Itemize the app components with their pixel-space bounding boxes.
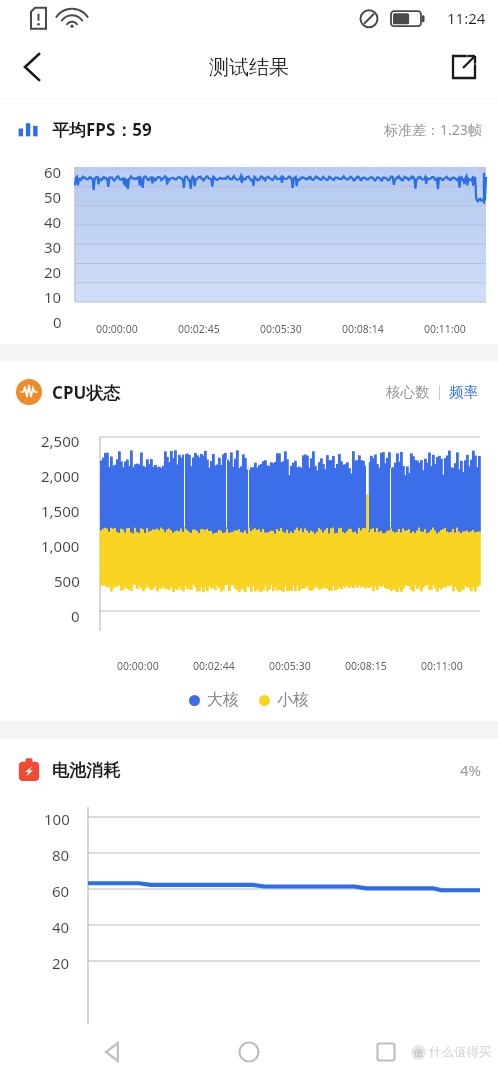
staticText: 值 bbox=[414, 1047, 423, 1058]
staticText: 测试结果 bbox=[209, 55, 289, 80]
staticText: 2,000 bbox=[41, 466, 80, 486]
staticText: 平均FPS：59 bbox=[52, 118, 152, 141]
staticText: 4% bbox=[460, 760, 482, 780]
staticText: 40 bbox=[52, 917, 70, 937]
staticText: 核心数 bbox=[386, 383, 430, 401]
staticText: 大核 bbox=[207, 690, 239, 710]
staticText: 20 bbox=[52, 953, 70, 973]
staticText: 100 bbox=[44, 809, 70, 829]
button[interactable]: 频率 bbox=[445, 379, 482, 405]
staticText: 1,500 bbox=[41, 501, 80, 521]
staticText: 什么值得买 bbox=[429, 1044, 492, 1060]
button[interactable]: Recents bbox=[362, 1028, 410, 1076]
staticText: 00:11:00 bbox=[424, 322, 466, 336]
staticText: 80 bbox=[52, 845, 70, 865]
staticText: 电池消耗 bbox=[52, 760, 120, 781]
staticText: 1,000 bbox=[41, 536, 80, 556]
staticText: 标准差：1.23帧 bbox=[384, 120, 482, 139]
staticText: 60 bbox=[44, 162, 62, 182]
staticText: 00:08:14 bbox=[342, 322, 384, 336]
staticText: 00:00:00 bbox=[117, 659, 159, 673]
staticText: 0 bbox=[53, 312, 62, 332]
staticText: 频率 bbox=[449, 383, 478, 401]
button[interactable]: 核心数 bbox=[382, 379, 434, 405]
staticText: CPU状态 bbox=[52, 381, 121, 404]
button[interactable]: Home bbox=[225, 1028, 273, 1076]
staticText: 00:11:00 bbox=[421, 659, 463, 673]
button[interactable]: Back bbox=[8, 43, 56, 91]
staticText: 50 bbox=[44, 187, 62, 207]
staticText: 2,500 bbox=[41, 431, 80, 451]
staticText: 小核 bbox=[277, 690, 309, 710]
staticText: 60 bbox=[52, 881, 70, 901]
staticText: 40 bbox=[44, 212, 62, 232]
staticText: 00:05:30 bbox=[269, 659, 311, 673]
button[interactable]: Back bbox=[89, 1028, 137, 1076]
staticText: 20 bbox=[44, 262, 62, 282]
staticText: 00:00:00 bbox=[96, 322, 138, 336]
staticText: 00:08:15 bbox=[345, 659, 387, 673]
staticText: 10 bbox=[44, 287, 62, 307]
staticText: 0 bbox=[71, 606, 80, 626]
staticText: 11:24 bbox=[447, 8, 486, 28]
staticText: 30 bbox=[44, 237, 62, 257]
staticText: 00:02:44 bbox=[193, 659, 235, 673]
staticText: 500 bbox=[54, 571, 80, 591]
staticText: 00:02:45 bbox=[178, 322, 220, 336]
button[interactable]: Share bbox=[440, 43, 488, 91]
staticText: 00:05:30 bbox=[260, 322, 302, 336]
